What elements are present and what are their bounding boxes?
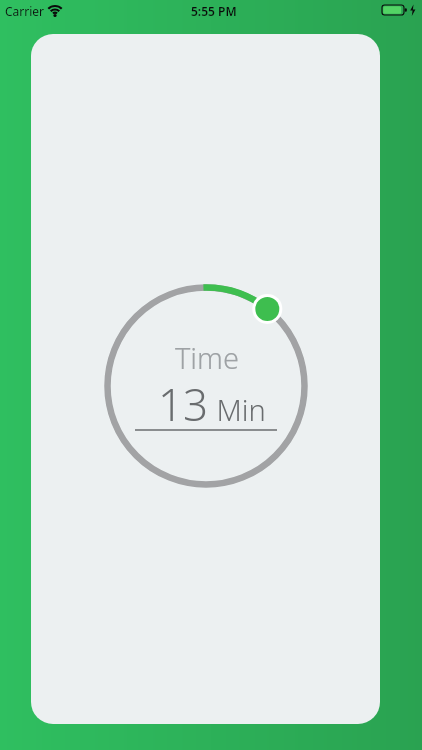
staticText: Min: [209, 390, 266, 429]
staticText: Time: [175, 338, 240, 377]
staticText: 5:55 PM: [191, 3, 237, 19]
staticText: Carrier: [5, 3, 45, 19]
button[interactable]: Time: [31, 34, 380, 724]
staticText: 13: [158, 374, 209, 434]
